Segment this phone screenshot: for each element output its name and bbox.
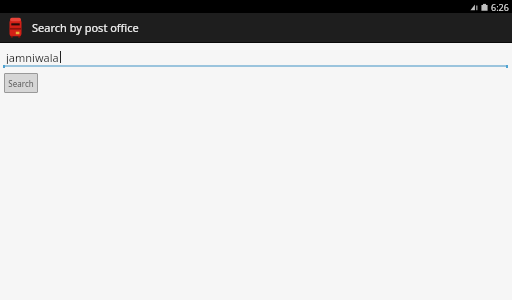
button[interactable]: App icon [0, 13, 512, 42]
other: App icon [8, 17, 23, 38]
button[interactable]: Search [4, 73, 38, 93]
staticText: jamniwala [6, 50, 59, 64]
button[interactable]: jamniwala [0, 50, 512, 68]
staticText: Search by post office [32, 20, 139, 35]
staticText: 6:26 [491, 1, 509, 13]
staticText: Search [8, 78, 34, 89]
